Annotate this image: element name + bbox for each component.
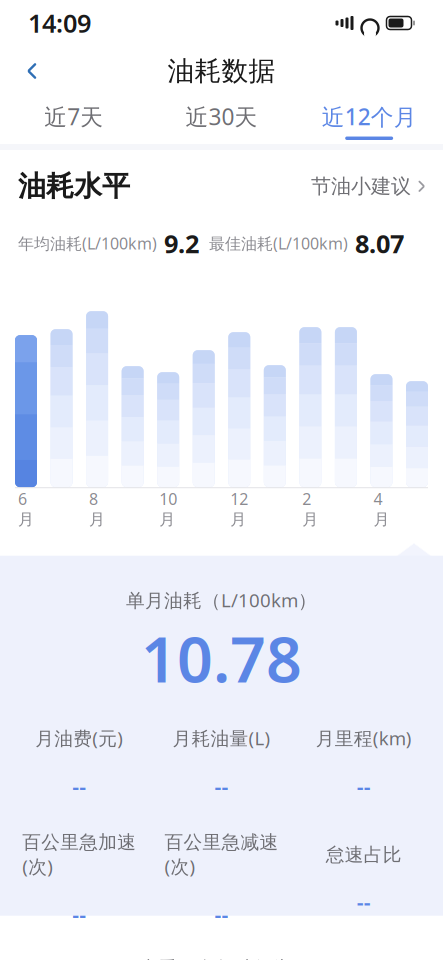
staticText: 10.78: [141, 616, 302, 700]
button[interactable]: 节油小建议: [311, 168, 425, 205]
staticText: 10月: [159, 488, 177, 529]
staticText: 节油小建议: [311, 174, 411, 199]
button[interactable]: 查看更多驾驶行为: [125, 947, 318, 960]
staticText: 14:09: [28, 6, 91, 40]
staticText: 近7天: [44, 101, 103, 131]
staticText: --: [72, 772, 86, 801]
staticText: 2月: [302, 488, 318, 529]
staticText: 8月: [89, 488, 105, 529]
staticText: 近12个月: [322, 101, 417, 131]
staticText: --: [214, 900, 228, 929]
staticText: 百公里急加速(次): [22, 831, 136, 878]
staticText: --: [214, 772, 228, 801]
staticText: 查看更多驾驶行为: [139, 957, 291, 960]
staticText: 8.07: [348, 227, 404, 260]
staticText: 最佳油耗(L/100km): [199, 233, 348, 254]
button[interactable]: 近12个月: [295, 96, 443, 144]
staticText: 年均油耗(L/100km): [18, 233, 157, 254]
staticText: --: [72, 900, 86, 929]
staticText: 12月: [230, 488, 248, 529]
staticText: 百公里急减速(次): [164, 831, 278, 878]
staticText: 4月: [373, 488, 389, 529]
staticText: 月里程(km): [316, 726, 412, 750]
staticText: 月油费(元): [35, 726, 123, 750]
staticText: 月耗油量(L): [172, 726, 270, 750]
staticText: 怠速占比: [326, 843, 402, 866]
staticText: --: [357, 772, 371, 801]
button[interactable]: 近7天: [0, 96, 148, 144]
button[interactable]: 近30天: [148, 96, 295, 144]
staticText: 油耗数据: [167, 55, 275, 87]
staticText: 单月油耗（L/100km）: [126, 588, 317, 612]
staticText: 9.2: [157, 227, 199, 260]
staticText: --: [357, 888, 371, 916]
staticText: 近30天: [185, 101, 257, 131]
staticText: 6月: [18, 488, 34, 529]
staticText: 油耗水平: [18, 169, 130, 203]
button[interactable]: Back: [10, 49, 54, 93]
